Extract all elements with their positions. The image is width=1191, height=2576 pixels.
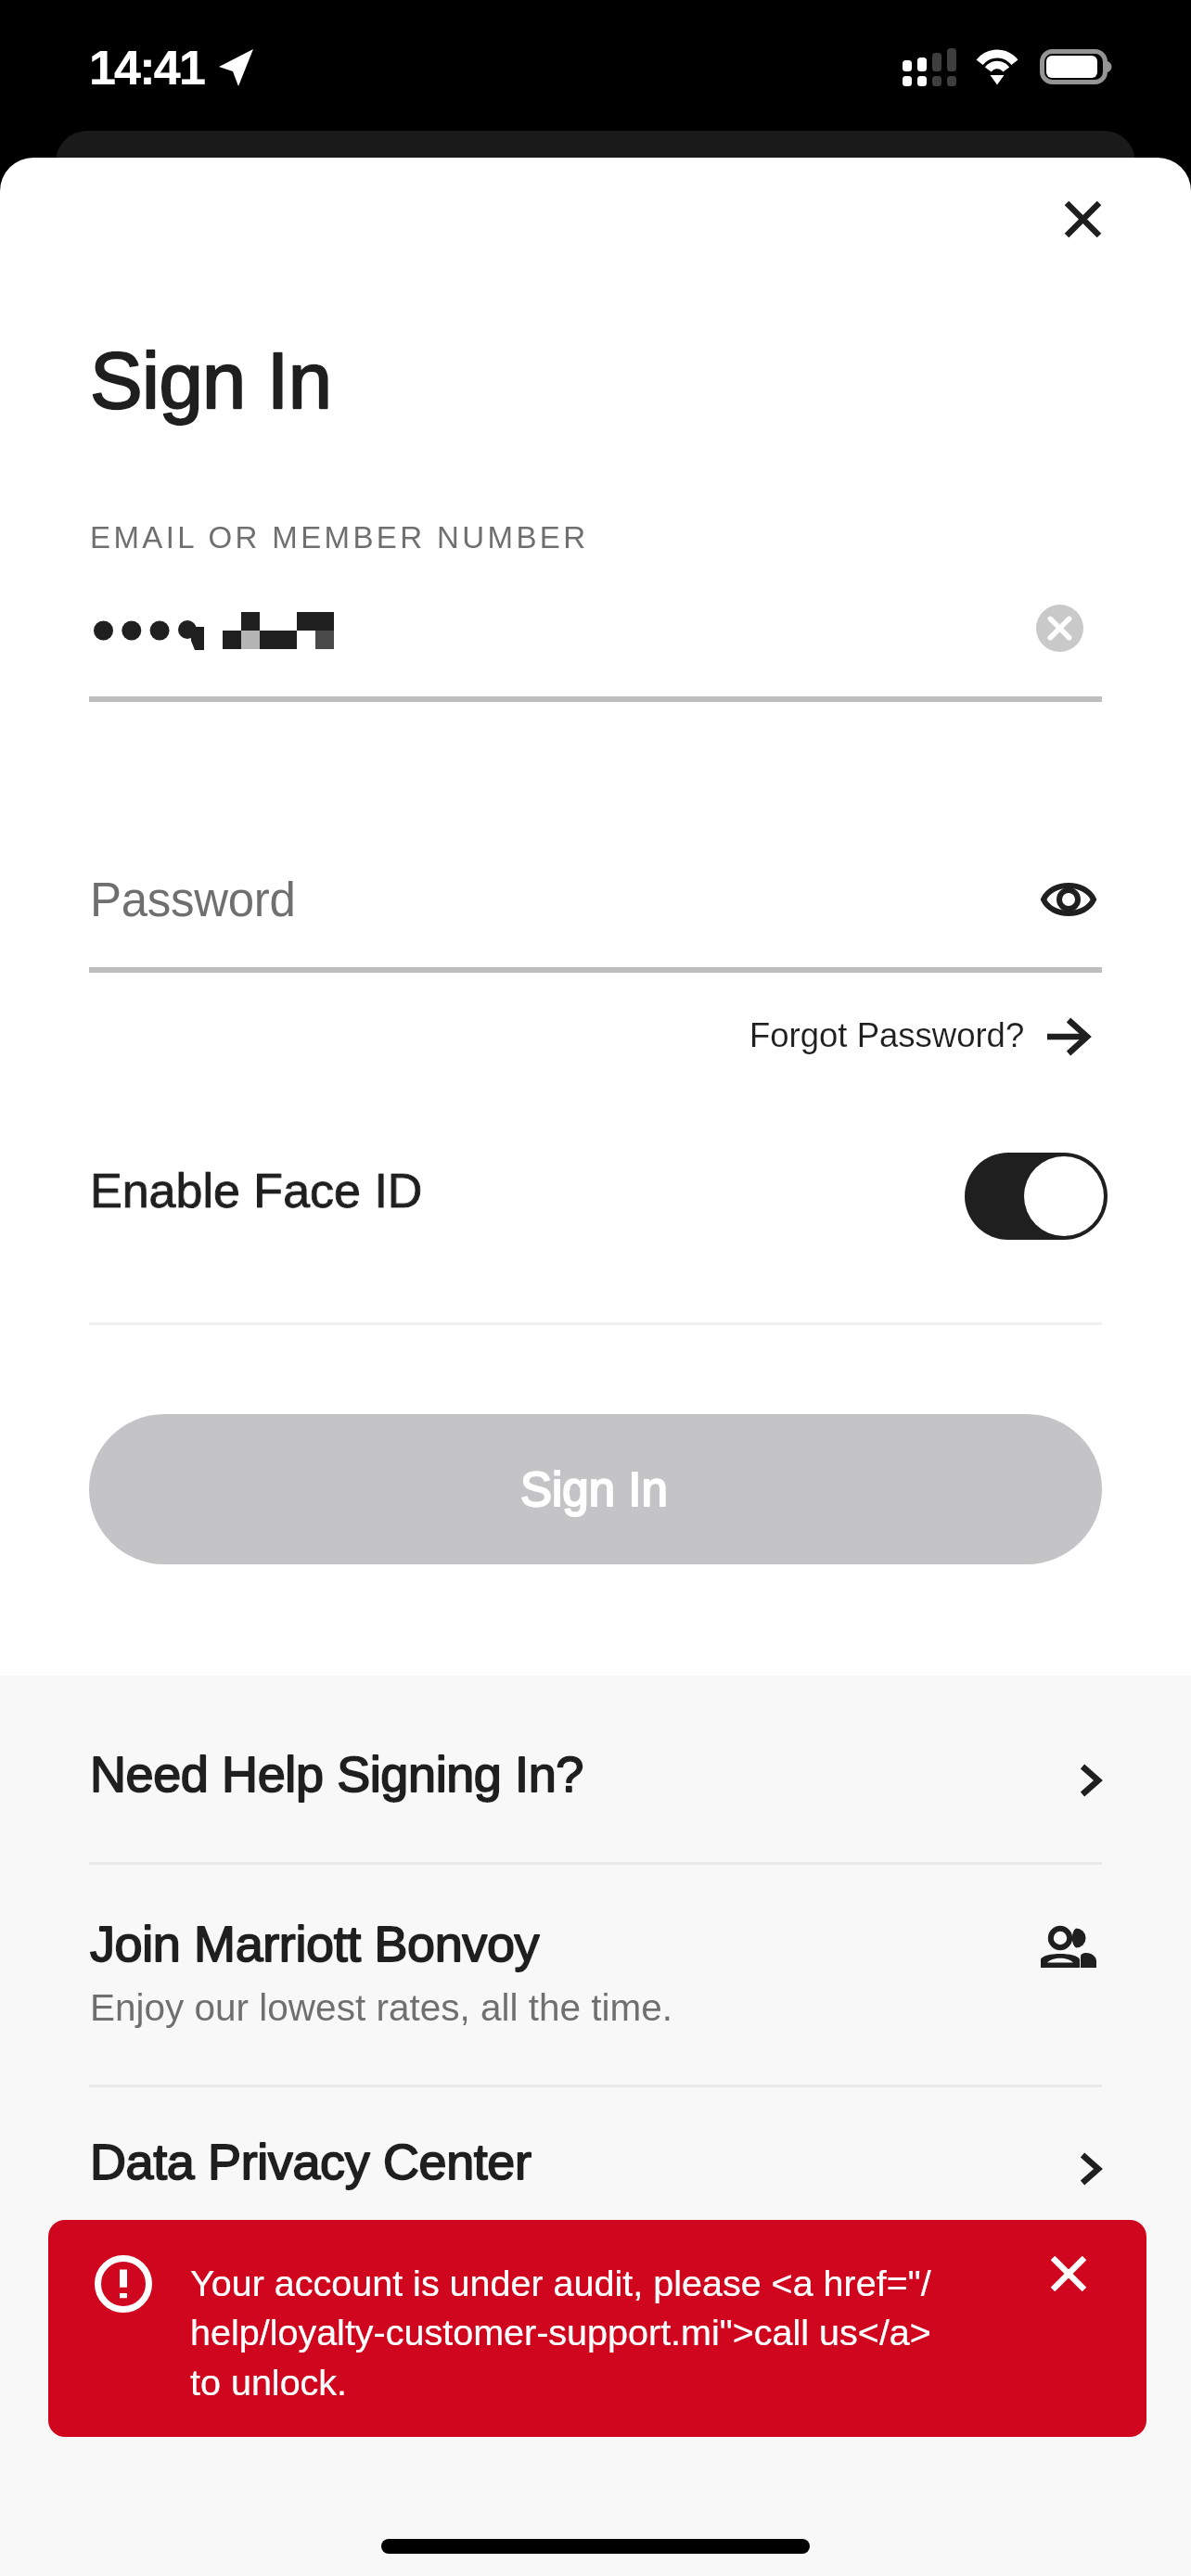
button[interactable]: Sign In — [89, 1414, 1102, 1564]
staticText: EMAIL OR MEMBER NUMBER — [90, 520, 589, 555]
staticText: Your account is under audit, please <a h… — [190, 2263, 1025, 2404]
staticText: Sign In — [90, 337, 332, 425]
button[interactable]: Need Help Signing In? — [0, 1699, 1191, 1863]
button[interactable]: Dismiss — [1030, 2235, 1108, 2313]
staticText: Data Privacy Center — [90, 2134, 531, 2189]
button[interactable]: Close — [1038, 174, 1127, 263]
staticText: 14:41 — [89, 41, 204, 95]
button[interactable]: Forgot Password? — [733, 996, 1102, 1081]
staticText: Sign In — [90, 337, 332, 425]
button[interactable]: Show password — [1022, 853, 1115, 946]
staticText: Join Marriott Bonvoy — [90, 1916, 540, 1971]
button[interactable]: Join Marriott Bonvoy — [0, 1865, 1191, 2085]
staticText: Enable Face ID — [90, 1164, 423, 1218]
staticText: Need Help Signing In? — [90, 1746, 583, 1802]
staticText: Join Marriott Bonvoy — [90, 1916, 540, 1971]
staticText: Enable Face ID — [90, 1164, 423, 1218]
staticText: Sign In — [520, 1463, 668, 1516]
button[interactable]: Enable Face ID — [0, 1137, 1191, 1256]
staticText: Need Help Signing In? — [90, 1746, 583, 1802]
staticText: Forgot Password? — [749, 1016, 1025, 1054]
staticText: Enjoy our lowest rates, all the time. — [90, 1986, 673, 2028]
staticText: Sign In — [520, 1463, 668, 1516]
staticText: Password — [90, 874, 296, 926]
staticText: Data Privacy Center — [90, 2134, 531, 2189]
button[interactable]: Data Privacy Center — [0, 2087, 1191, 2251]
button[interactable]: Clear text — [1013, 581, 1106, 674]
